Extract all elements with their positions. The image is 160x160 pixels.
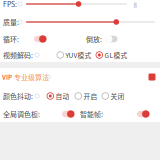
staticText: 自动 (56, 91, 70, 101)
button[interactable]: Off (105, 35, 117, 43)
button[interactable]: Pro algorithm enabled (148, 73, 155, 80)
staticText: 8 (133, 1, 136, 9)
button[interactable]: YUV模式 (57, 50, 160, 60)
button[interactable]: On (62, 110, 74, 118)
staticText: 质量: (3, 17, 19, 27)
staticText: 智能帧: (80, 109, 103, 119)
staticText: GL模式 (105, 50, 128, 60)
staticText: 关闭 (111, 91, 125, 101)
staticText: 颜色抖动: (3, 91, 33, 101)
staticText: 开启 (84, 91, 98, 101)
staticText: 倒放: (86, 34, 102, 44)
button[interactable]: 自动 (47, 91, 160, 101)
staticText: YUV模式 (66, 50, 92, 60)
button[interactable]: 关闭 (102, 91, 160, 101)
button[interactable]: GL模式 (96, 50, 160, 60)
staticText: 循环: (3, 34, 19, 44)
staticText: VIP (2, 73, 12, 81)
button[interactable]: On (137, 110, 149, 118)
button[interactable]: On (34, 35, 46, 43)
staticText: 全局调色板: (3, 109, 40, 119)
staticText: 专业级算法 (14, 72, 49, 82)
staticText: FPS: (3, 0, 17, 9)
button[interactable]: 开启 (75, 91, 160, 101)
staticText: 视频解码: (3, 50, 33, 60)
